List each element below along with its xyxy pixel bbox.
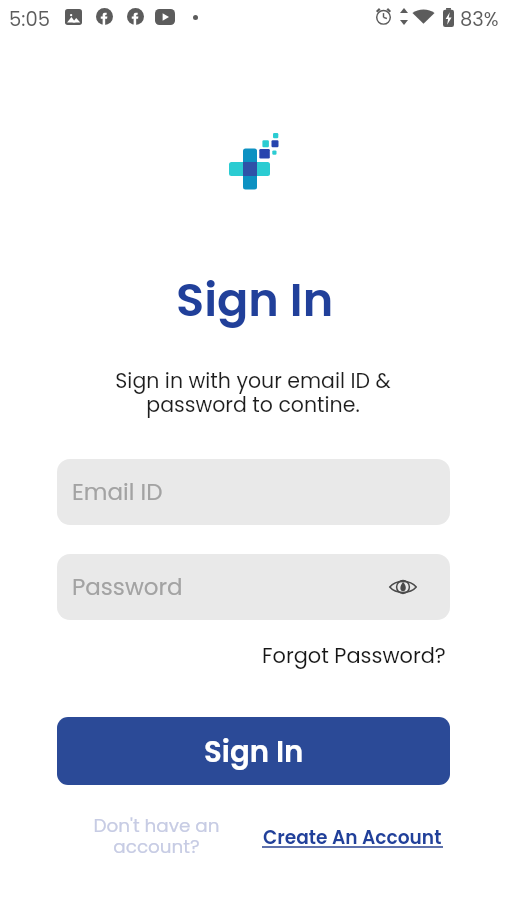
button[interactable]: Show password (387, 571, 419, 603)
staticText: Sign in with your email ID & password to… (115, 366, 391, 419)
button[interactable]: Create An Account (258, 822, 447, 852)
staticText: Email ID (72, 476, 163, 508)
staticText: Don't have an account? (93, 813, 220, 860)
button[interactable]: Email ID (57, 459, 450, 525)
staticText: Password (72, 571, 183, 603)
staticText: Forgot Password? (262, 641, 446, 670)
button[interactable]: Forgot Password? (257, 638, 451, 673)
staticText: Create An Account (263, 824, 442, 850)
button[interactable]: Password (57, 554, 450, 620)
staticText: 5:05 (9, 6, 50, 33)
staticText: 83% (460, 6, 499, 33)
staticText: Sign In (204, 731, 304, 772)
staticText: Sign In (176, 267, 334, 332)
button[interactable]: Sign In (57, 717, 450, 785)
